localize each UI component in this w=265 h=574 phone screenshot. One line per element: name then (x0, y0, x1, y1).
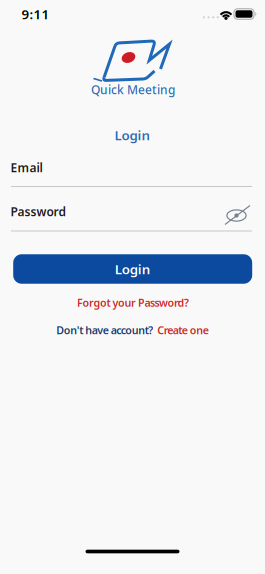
staticText: Quick Meeting (91, 81, 175, 97)
staticText: Email (10, 159, 42, 175)
staticText: Login (115, 260, 151, 278)
staticText: 9:11 (21, 5, 49, 23)
staticText: Login (114, 126, 150, 144)
staticText: Forgot your Password? (77, 295, 189, 310)
button[interactable]: Login (13, 254, 252, 284)
button[interactable]: Forgot your Password? (77, 295, 189, 310)
staticText: Create one (157, 323, 209, 337)
button[interactable]: Create one (157, 323, 209, 337)
staticText: Don't have account? (56, 323, 153, 337)
staticText: Password (10, 203, 66, 219)
button[interactable]: Show password (221, 200, 251, 228)
